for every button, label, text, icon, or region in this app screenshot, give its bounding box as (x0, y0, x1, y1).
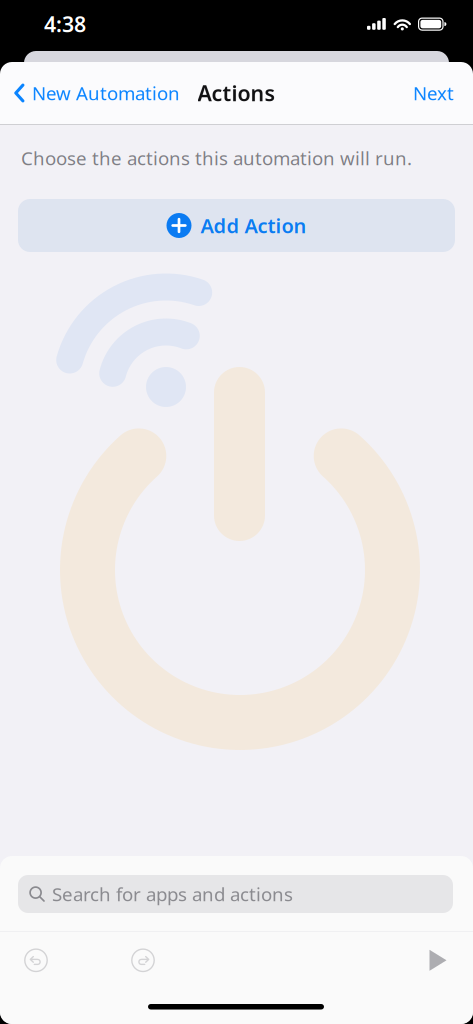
button[interactable]: New Automation (0, 69, 180, 117)
button[interactable]: Search for apps and actions (18, 875, 453, 913)
staticText: New Automation (32, 81, 180, 105)
staticText: Next (413, 81, 454, 105)
staticText: 4:38 (44, 10, 86, 38)
staticText: Choose the actions this automation will … (21, 146, 412, 170)
button[interactable]: Run (428, 949, 448, 971)
staticText: Add Action (200, 212, 306, 239)
button[interactable]: Add Action (18, 199, 455, 252)
staticText: Search for apps and actions (52, 882, 293, 906)
button[interactable]: Undo (24, 948, 48, 972)
staticText: Actions (197, 79, 275, 107)
button[interactable]: Redo (131, 948, 155, 972)
button[interactable]: Next (413, 69, 473, 117)
